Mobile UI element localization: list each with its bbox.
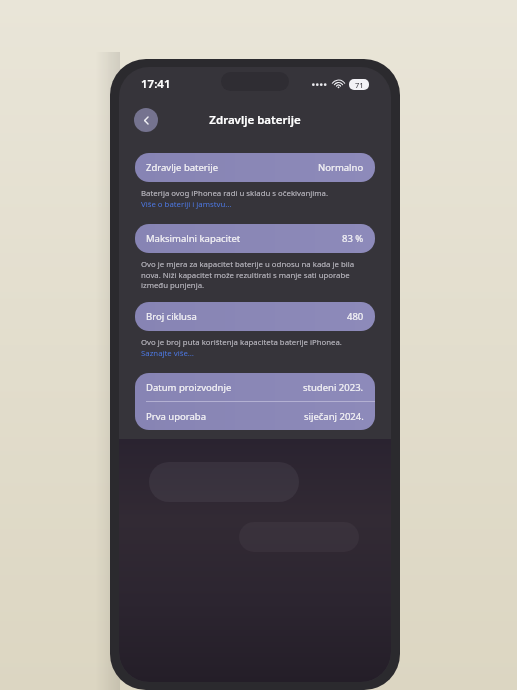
button[interactable]: Zdravlje baterije	[135, 153, 375, 182]
staticText: Maksimalni kapacitet	[146, 232, 342, 245]
button[interactable]: Prva uporaba	[135, 402, 375, 430]
staticText: 480	[347, 310, 364, 323]
staticText: Broj ciklusa	[146, 310, 347, 323]
staticText: Datum proizvodnje	[146, 381, 303, 394]
staticText: 83 %	[342, 232, 364, 245]
staticText: Ovo je mjera za kapacitet baterije u odn…	[141, 259, 371, 290]
staticText: Prva uporaba	[146, 410, 304, 423]
button[interactable]: Maksimalni kapacitet	[135, 224, 375, 253]
staticText: Ovo je broj puta korištenja kapaciteta b…	[141, 337, 371, 348]
staticText: Zdravlje baterije	[146, 161, 318, 174]
staticText: 71	[355, 80, 364, 90]
staticText: siječanj 2024.	[304, 410, 364, 423]
button[interactable]: Natrag	[134, 108, 158, 132]
staticText: studeni 2023.	[303, 381, 364, 394]
staticText: Baterija ovog iPhonea radi u skladu s oč…	[141, 188, 371, 199]
button[interactable]: Datum proizvodnje	[135, 373, 375, 401]
staticText: Zdravlje baterije	[209, 112, 301, 128]
button[interactable]: Broj ciklusa	[135, 302, 375, 331]
staticText: Normalno	[318, 161, 364, 174]
button[interactable]: Saznajte više…	[141, 348, 195, 359]
button[interactable]: Više o bateriji i jamstvu…	[141, 199, 232, 210]
staticText: 17:41	[141, 76, 171, 92]
